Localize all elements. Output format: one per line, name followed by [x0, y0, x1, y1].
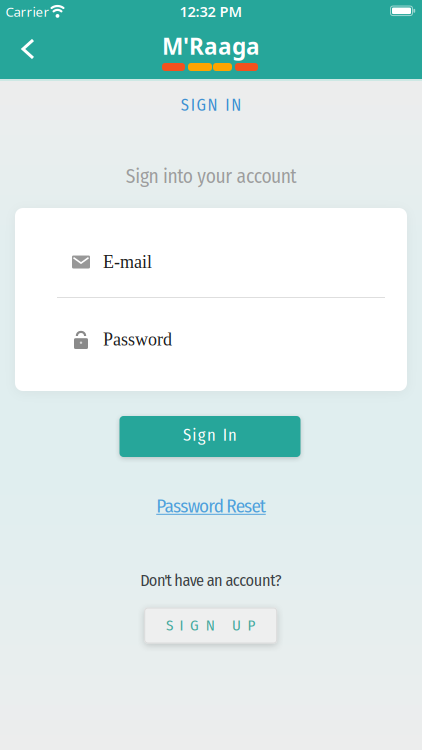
- staticText: i: [192, 425, 196, 445]
- staticText: N: [207, 95, 217, 115]
- staticText: 12:32 PM: [179, 1, 242, 21]
- staticText: Carrier: [5, 3, 49, 20]
- staticText: S: [183, 425, 191, 445]
- staticText: G: [190, 616, 199, 635]
- staticText: U: [232, 616, 241, 635]
- button[interactable]: S: [119, 416, 300, 457]
- staticText: N: [231, 95, 241, 115]
- staticText: P: [247, 616, 255, 635]
- staticText: M'Raaga: [162, 31, 260, 61]
- staticText: Don't have an account?: [140, 571, 282, 590]
- button[interactable]: Password Reset: [156, 495, 266, 517]
- staticText: I: [223, 425, 227, 445]
- staticText: G: [197, 95, 206, 115]
- staticText: Password: [103, 329, 172, 349]
- button[interactable]: Back: [6, 28, 49, 69]
- staticText: I: [225, 95, 229, 115]
- staticText: I: [179, 616, 183, 635]
- button[interactable]: E-mail: [15, 208, 407, 297]
- staticText: N: [206, 616, 215, 635]
- staticText: g: [198, 425, 206, 445]
- button[interactable]: Password: [15, 298, 407, 391]
- staticText: n: [207, 425, 216, 445]
- staticText: S: [181, 95, 189, 115]
- staticText: I: [191, 95, 195, 115]
- button[interactable]: S: [144, 607, 277, 643]
- staticText: E-mail: [103, 252, 152, 272]
- staticText: Sign into your account: [126, 165, 296, 188]
- staticText: S: [166, 616, 173, 635]
- staticText: n: [228, 425, 237, 445]
- staticText: Password Reset: [156, 495, 266, 517]
